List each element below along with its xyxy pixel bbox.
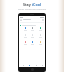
button[interactable]: Devices: [26, 64, 31, 67]
staticText: Smart Cooling for Everyone: [0, 8, 64, 11]
button[interactable]: Device tile: [37, 34, 43, 38]
button[interactable]: Device tile: [29, 34, 35, 38]
button[interactable]: Home: [20, 64, 25, 67]
button[interactable]: Device tile: [29, 41, 35, 45]
button[interactable]: [19, 24, 45, 26]
staticText: Stay: [23, 2, 31, 7]
button[interactable]: Device tile: [37, 41, 43, 45]
button[interactable]: Device tile: [37, 27, 43, 31]
button[interactable]: Menu: [20, 19, 22, 21]
button[interactable]: Device tile: [22, 34, 28, 38]
button[interactable]: Device tile: [22, 27, 28, 31]
button[interactable]: Stats: [33, 64, 38, 67]
other: Home: [31, 68, 34, 71]
button[interactable]: Menu: [19, 18, 45, 21]
button[interactable]: Settings: [39, 64, 44, 67]
button[interactable]: Device tile: [22, 41, 28, 45]
button[interactable]: Device tile: [29, 27, 35, 31]
staticText: iCool: [32, 2, 41, 7]
